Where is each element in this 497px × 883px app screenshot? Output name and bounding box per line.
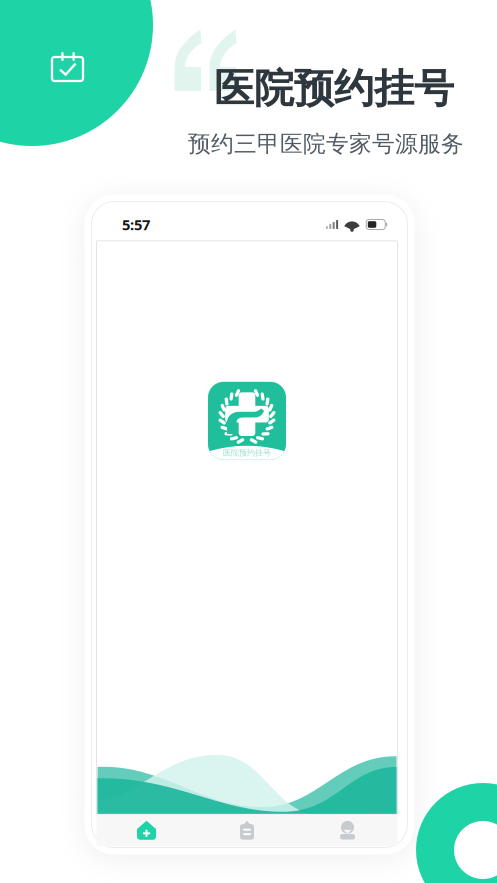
staticText: 医院预约挂号 [223,448,271,458]
staticText: 5:57 [122,215,150,234]
staticText: 医院预约挂号 [214,64,454,113]
button[interactable]: Profile [297,815,397,846]
button[interactable]: Home [96,815,196,846]
button[interactable]: Orders [196,815,297,846]
staticText: 预约三甲医院专家号源服务 [188,130,464,158]
